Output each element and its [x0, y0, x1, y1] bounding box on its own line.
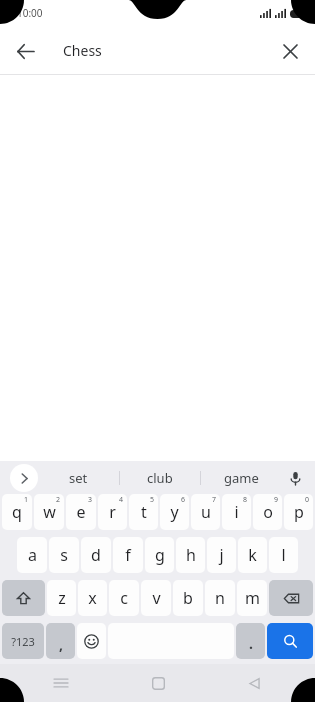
button[interactable]: j	[207, 537, 236, 573]
staticText: e	[76, 501, 86, 523]
staticText: 7	[212, 495, 217, 505]
button[interactable]: ,	[46, 623, 75, 659]
button[interactable]: n	[205, 580, 235, 616]
button[interactable]: l	[269, 537, 298, 573]
staticText: .	[249, 634, 253, 653]
button[interactable]: Emoji	[77, 623, 106, 659]
button[interactable]: Search	[267, 623, 313, 659]
staticText: ?123	[11, 634, 35, 649]
staticText: 2	[56, 495, 61, 505]
button[interactable]: Voice input	[281, 464, 309, 492]
staticText: game	[224, 469, 259, 487]
staticText: g	[155, 544, 165, 566]
staticText: q	[12, 501, 22, 523]
staticText: o	[263, 501, 273, 523]
button[interactable]: m	[237, 580, 267, 616]
button[interactable]: Shift	[2, 580, 45, 616]
staticText: x	[88, 587, 97, 609]
staticText: m	[245, 587, 260, 609]
staticText: t	[141, 501, 147, 523]
staticText: r	[109, 501, 116, 523]
staticText: 9	[274, 495, 279, 505]
button[interactable]: z	[47, 580, 76, 616]
staticText: i	[234, 501, 239, 523]
button[interactable]: .	[236, 623, 265, 659]
button[interactable]: Home	[141, 666, 175, 700]
button[interactable]: p	[284, 494, 313, 530]
staticText: 6	[181, 495, 186, 505]
button[interactable]: Back	[8, 34, 42, 68]
button[interactable]: i	[222, 494, 251, 530]
button[interactable]: u	[191, 494, 220, 530]
button[interactable]: s	[49, 537, 79, 573]
button[interactable]: x	[78, 580, 107, 616]
button[interactable]: More suggestions	[10, 464, 38, 492]
button[interactable]: r	[98, 494, 127, 530]
button[interactable]: k	[238, 537, 267, 573]
staticText: set	[69, 469, 88, 487]
button[interactable]: t	[129, 494, 158, 530]
staticText: 5	[150, 495, 155, 505]
staticText: k	[248, 544, 257, 566]
button[interactable]: o	[253, 494, 282, 530]
staticText: 3	[88, 495, 93, 505]
button[interactable]: Back	[237, 666, 271, 700]
button[interactable]: club	[120, 461, 200, 494]
staticText: c	[120, 587, 128, 609]
staticText: y	[170, 501, 179, 523]
button[interactable]: h	[176, 537, 205, 573]
button[interactable]: c	[109, 580, 139, 616]
staticText: 1	[24, 495, 29, 505]
staticText: s	[60, 544, 68, 566]
button[interactable]: a	[17, 537, 47, 573]
staticText: a	[28, 544, 37, 566]
button[interactable]: e	[66, 494, 96, 530]
staticText: j	[219, 544, 224, 566]
staticText: p	[294, 501, 304, 523]
staticText: ,	[59, 635, 63, 654]
staticText: l	[281, 544, 286, 566]
button[interactable]: q	[2, 494, 32, 530]
staticText: d	[91, 544, 101, 566]
staticText: 10:00	[17, 6, 43, 20]
staticText: club	[147, 469, 173, 487]
button[interactable]: Clear	[273, 34, 307, 68]
button[interactable]: set	[38, 461, 119, 494]
staticText: 4	[119, 495, 124, 505]
button[interactable]: w	[34, 494, 64, 530]
button[interactable]: d	[81, 537, 111, 573]
staticText: f	[125, 544, 131, 566]
staticText: n	[215, 587, 225, 609]
staticText: w	[43, 501, 56, 523]
button[interactable]: v	[141, 580, 171, 616]
button[interactable]: b	[173, 580, 203, 616]
button[interactable]: f	[113, 537, 143, 573]
staticText: u	[201, 501, 211, 523]
button[interactable]: g	[145, 537, 174, 573]
staticText: v	[152, 587, 161, 609]
staticText: Chess	[63, 41, 102, 60]
button[interactable]: game	[201, 461, 281, 494]
button[interactable]: Recents	[44, 666, 78, 700]
staticText: h	[186, 544, 196, 566]
button[interactable]: Backspace	[269, 580, 313, 616]
button[interactable]: ?123	[2, 623, 44, 659]
staticText: b	[183, 587, 193, 609]
staticText: 8	[243, 495, 248, 505]
button[interactable]: y	[160, 494, 189, 530]
staticText: 0	[305, 495, 310, 505]
staticText: z	[58, 587, 66, 609]
